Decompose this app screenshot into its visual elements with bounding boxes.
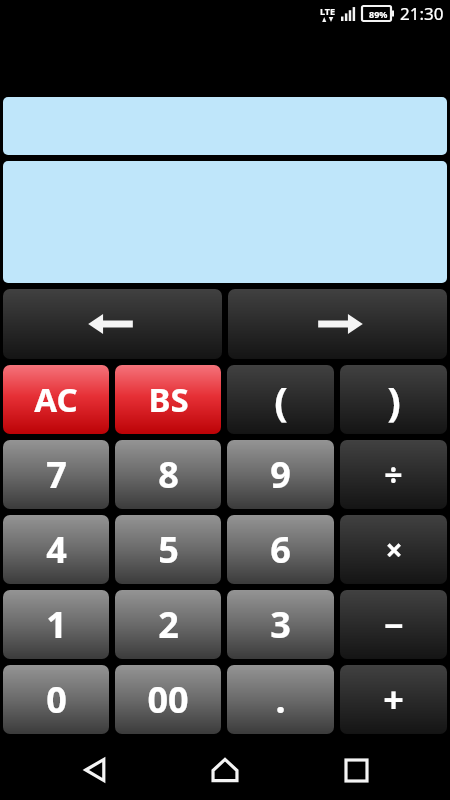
staticText: 7 <box>46 450 67 499</box>
button[interactable]: 8 <box>115 440 221 509</box>
staticText: 89% <box>369 8 388 20</box>
staticText: 0 <box>46 675 67 724</box>
button[interactable]: 2 <box>115 590 221 659</box>
staticText: + <box>383 675 404 724</box>
button[interactable]: × <box>340 515 447 584</box>
staticText: ÷ <box>384 453 403 497</box>
staticText: ( <box>274 373 288 427</box>
button[interactable]: 0 <box>3 665 109 734</box>
staticText: . <box>275 675 286 724</box>
staticText: 5 <box>158 525 179 574</box>
button[interactable]: 1 <box>3 590 109 659</box>
button[interactable]: 3 <box>227 590 334 659</box>
button[interactable]: 6 <box>227 515 334 584</box>
staticText: LTE <box>320 5 336 17</box>
staticText: ) <box>387 373 401 427</box>
button[interactable]: BS <box>115 365 221 434</box>
button[interactable]: Cursor right <box>228 289 447 359</box>
staticText: × <box>385 529 403 570</box>
button[interactable]: 4 <box>3 515 109 584</box>
button[interactable]: AC <box>3 365 109 434</box>
staticText: 2 <box>158 600 179 649</box>
button[interactable] <box>3 161 447 283</box>
button[interactable]: ) <box>340 365 447 434</box>
staticText: − <box>384 602 404 648</box>
staticText: 1 <box>46 600 67 649</box>
button[interactable]: 5 <box>115 515 221 584</box>
button[interactable]: 00 <box>115 665 221 734</box>
button[interactable]: + <box>340 665 447 734</box>
staticText: 21:30 <box>400 2 444 25</box>
staticText: 3 <box>270 600 291 649</box>
button[interactable]: Cursor left <box>3 289 222 359</box>
staticText: 9 <box>270 450 291 499</box>
button[interactable]: ( <box>227 365 334 434</box>
staticText: 4 <box>46 525 67 574</box>
staticText: 8 <box>158 450 179 499</box>
staticText: AC <box>34 377 78 422</box>
staticText: BS <box>148 377 189 422</box>
button[interactable]: ÷ <box>340 440 447 509</box>
staticText: 00 <box>147 675 189 724</box>
button[interactable]: − <box>340 590 447 659</box>
button[interactable]: . <box>227 665 334 734</box>
button[interactable]: Back <box>59 740 131 800</box>
staticText: 6 <box>270 525 291 574</box>
button[interactable]: 9 <box>227 440 334 509</box>
button[interactable]: Home <box>189 740 261 800</box>
button[interactable]: Recent apps <box>320 740 392 800</box>
button[interactable]: 7 <box>3 440 109 509</box>
button[interactable] <box>3 97 447 155</box>
